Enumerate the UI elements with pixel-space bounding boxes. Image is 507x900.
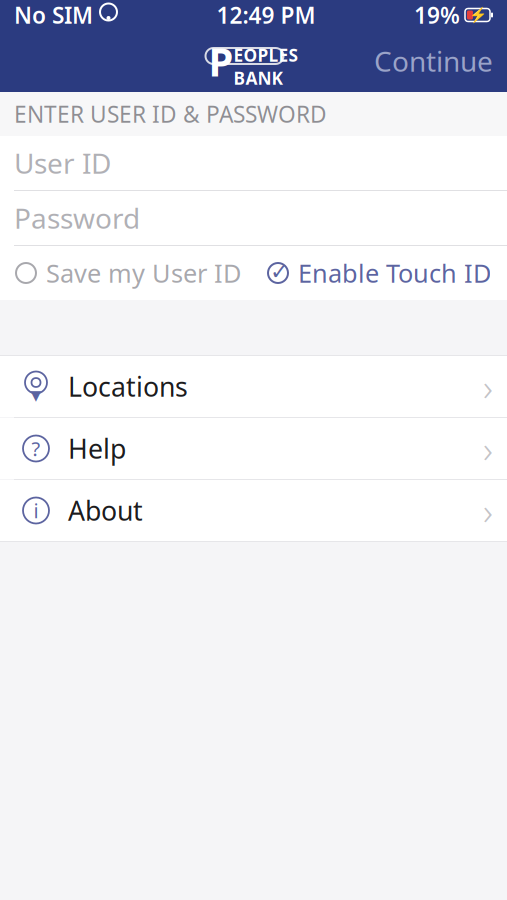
staticText: Locations [68, 369, 188, 404]
staticText: Enable Touch ID [298, 256, 491, 290]
staticText: ▾ [30, 382, 41, 407]
button[interactable]: i [0, 480, 507, 541]
staticText: Password [14, 199, 140, 237]
button[interactable]: Save my User ID [16, 248, 241, 298]
staticText: Save my User ID [46, 256, 241, 290]
staticText: 12:49 PM [216, 0, 315, 30]
staticText: Help [68, 431, 126, 466]
staticText: User ID [14, 144, 111, 182]
staticText: › [483, 362, 493, 411]
button[interactable]: ? [0, 418, 507, 480]
staticText: › [483, 486, 493, 535]
staticText: Continue [374, 42, 493, 80]
staticText: P [208, 34, 233, 87]
button[interactable]: Continue [360, 34, 507, 88]
staticText: › [483, 424, 493, 473]
staticText: i [33, 497, 38, 524]
button[interactable]: ✓ [266, 248, 491, 298]
staticText: ✓ [270, 259, 289, 284]
staticText: No SIM [14, 0, 93, 30]
staticText: 19% [414, 0, 460, 30]
button[interactable]: ▾ [0, 356, 507, 418]
staticText: EOPLES BANK [233, 43, 298, 89]
staticText: ENTER USER ID & PASSWORD [14, 99, 327, 129]
staticText: About [68, 493, 143, 528]
staticText: ⚡ [468, 7, 486, 23]
staticText: ? [31, 435, 40, 462]
